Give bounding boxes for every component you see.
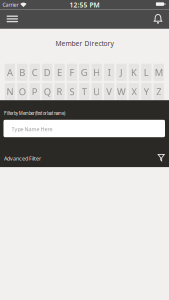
button[interactable]: X xyxy=(129,83,139,100)
button[interactable]: Y xyxy=(141,83,151,100)
button[interactable]: R xyxy=(54,83,65,100)
button[interactable]: Menu xyxy=(0,16,24,22)
staticText: R xyxy=(56,85,62,98)
button[interactable]: A xyxy=(5,64,15,81)
staticText: P xyxy=(32,85,38,98)
staticText: M xyxy=(155,66,163,78)
staticText: D xyxy=(44,66,51,78)
button[interactable]: O xyxy=(17,83,27,100)
staticText: Advanced Filter xyxy=(4,155,41,162)
staticText: Type Name Here xyxy=(11,126,52,133)
button[interactable]: Notifications xyxy=(148,13,169,24)
staticText: A xyxy=(7,66,13,78)
staticText: N xyxy=(6,85,13,98)
button[interactable]: J xyxy=(116,64,127,81)
button[interactable]: N xyxy=(5,83,15,100)
button[interactable]: B xyxy=(17,64,27,81)
staticText: K xyxy=(131,66,137,78)
button[interactable]: P xyxy=(30,83,40,100)
button[interactable]: Z xyxy=(154,83,164,100)
button[interactable]: G xyxy=(79,64,89,81)
staticText: G xyxy=(81,66,88,78)
button[interactable]: I xyxy=(104,64,114,81)
staticText: I xyxy=(108,66,111,78)
button[interactable]: C xyxy=(30,64,40,81)
button[interactable]: E xyxy=(54,64,65,81)
staticText: W xyxy=(117,85,126,98)
button[interactable]: K xyxy=(129,64,139,81)
staticText: Member Directory xyxy=(55,39,113,48)
button[interactable]: W xyxy=(116,83,127,100)
staticText: Q xyxy=(44,85,51,98)
staticText: Z xyxy=(156,85,161,98)
staticText: J xyxy=(120,66,123,78)
button[interactable]: H xyxy=(92,64,102,81)
staticText: T xyxy=(82,85,87,98)
button[interactable]: D xyxy=(42,64,52,81)
button[interactable]: Q xyxy=(42,83,52,100)
staticText: Carrier xyxy=(2,1,18,8)
button[interactable]: S xyxy=(67,83,77,100)
button[interactable]: T xyxy=(79,83,89,100)
staticText: E xyxy=(57,66,62,78)
staticText: S xyxy=(69,85,74,98)
staticText: V xyxy=(106,85,112,98)
staticText: C xyxy=(32,66,38,78)
button[interactable]: U xyxy=(92,83,102,100)
button[interactable]: V xyxy=(104,83,114,100)
staticText: H xyxy=(93,66,100,78)
button[interactable]: L xyxy=(141,64,151,81)
button[interactable]: M xyxy=(154,64,164,81)
button[interactable]: F xyxy=(67,64,77,81)
staticText: 12:55 PM xyxy=(69,0,99,9)
button[interactable]: Type Name Here xyxy=(0,120,169,137)
staticText: L xyxy=(144,66,149,78)
staticText: Filter by Member (first or last name) xyxy=(4,109,65,116)
staticText: F xyxy=(69,66,74,78)
staticText: O xyxy=(19,85,26,98)
staticText: X xyxy=(131,85,136,98)
staticText: B xyxy=(19,66,25,78)
button[interactable]: Advanced Filter xyxy=(0,137,169,162)
staticText: U xyxy=(93,85,100,98)
staticText: Y xyxy=(144,85,149,98)
